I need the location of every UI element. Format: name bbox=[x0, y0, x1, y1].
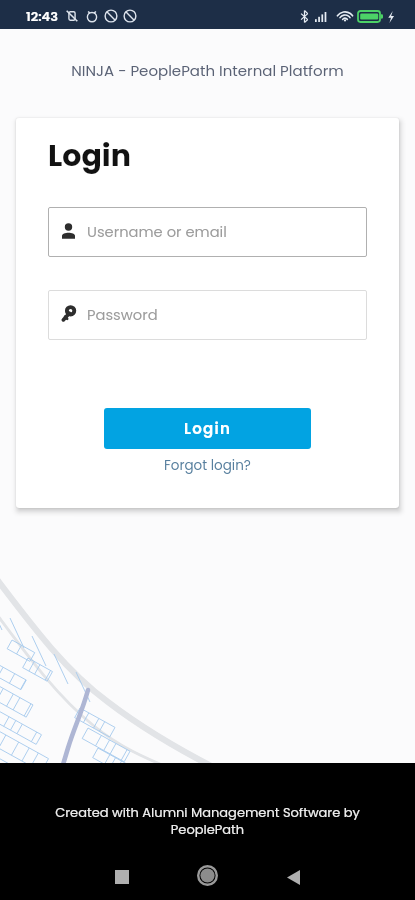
staticText: Username or email bbox=[87, 222, 227, 243]
button[interactable]: Login bbox=[104, 408, 311, 449]
button[interactable]: Recents bbox=[98, 854, 145, 900]
staticText: 12:43 bbox=[26, 7, 58, 25]
button[interactable]: Home bbox=[184, 852, 231, 898]
button[interactable]: Forgot login? bbox=[164, 456, 251, 475]
button[interactable]: Username or email bbox=[48, 207, 367, 257]
staticText: Forgot login? bbox=[164, 456, 251, 475]
staticText: Login bbox=[184, 418, 232, 439]
staticText: Password bbox=[87, 305, 158, 326]
staticText: Login bbox=[48, 135, 131, 177]
staticText: NINJA - PeoplePath Internal Platform bbox=[0, 60, 415, 81]
staticText: Created with Alumni Management Software … bbox=[36, 803, 379, 839]
button[interactable]: Password bbox=[48, 290, 367, 340]
button[interactable]: Back bbox=[270, 854, 317, 900]
